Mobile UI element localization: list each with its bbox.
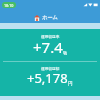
- staticText: 18:10: [4, 3, 14, 8]
- staticText: 円: [68, 81, 73, 87]
- staticText: +5,178: [27, 69, 68, 87]
- staticText: ホーム: [42, 14, 58, 21]
- staticText: +7.4: [33, 37, 63, 57]
- staticText: 運用収益額: [41, 66, 60, 71]
- staticText: 運用収益率: [41, 34, 60, 39]
- button[interactable]: ホーム: [0, 13, 96, 22]
- staticText: %: [63, 50, 68, 57]
